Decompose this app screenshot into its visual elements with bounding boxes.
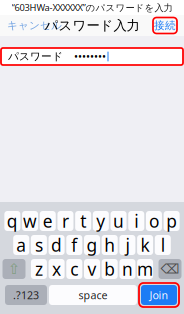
button[interactable]: x: [49, 259, 65, 279]
staticText: o: [149, 209, 159, 232]
staticText: b: [104, 257, 115, 280]
staticText: g: [86, 233, 97, 256]
button[interactable]: パスワード: [1, 48, 183, 65]
staticText: x: [52, 257, 61, 280]
button[interactable]: t: [75, 211, 91, 231]
staticText: ••••••••: [74, 49, 106, 64]
button[interactable]: Join: [139, 283, 179, 307]
staticText: t: [80, 209, 86, 232]
staticText: f: [71, 233, 77, 256]
staticText: k: [141, 233, 150, 256]
staticText: d: [51, 233, 62, 256]
staticText: u: [113, 209, 124, 232]
button[interactable]: c: [66, 259, 82, 279]
staticText: n: [122, 257, 133, 280]
staticText: v: [87, 257, 96, 280]
button[interactable]: i: [128, 211, 144, 231]
staticText: i: [134, 209, 138, 232]
button[interactable]: h: [102, 235, 118, 255]
button[interactable]: Shift: [2, 259, 25, 279]
button[interactable]: l: [155, 235, 171, 255]
staticText: ⌫: [160, 261, 179, 276]
button[interactable]: a: [13, 235, 29, 255]
staticText: p: [166, 209, 177, 232]
button[interactable]: m: [137, 259, 153, 279]
button[interactable]: キャンセル: [0, 15, 66, 35]
button[interactable]: space: [49, 285, 137, 305]
button[interactable]: y: [93, 211, 109, 231]
button[interactable]: n: [119, 259, 135, 279]
staticText: “603HWa-XXXXXX”のパスワードを入力: [11, 1, 172, 14]
staticText: h: [104, 233, 115, 256]
staticText: Join: [149, 288, 168, 302]
button[interactable]: w: [22, 211, 38, 231]
staticText: w: [23, 209, 37, 232]
staticText: l: [161, 233, 165, 256]
staticText: c: [70, 257, 78, 280]
button[interactable]: p: [164, 211, 180, 231]
staticText: q: [7, 209, 18, 232]
staticText: パスワード: [8, 50, 63, 63]
staticText: space: [78, 288, 107, 302]
staticText: パスワード入力: [44, 17, 139, 34]
button[interactable]: Delete: [158, 259, 181, 279]
staticText: キャンセル: [7, 19, 62, 32]
staticText: .?123: [13, 288, 39, 302]
staticText: j: [125, 233, 129, 256]
button[interactable]: e: [40, 211, 56, 231]
staticText: m: [137, 257, 153, 280]
button[interactable]: 接続: [153, 17, 184, 33]
button[interactable]: q: [4, 211, 20, 231]
button[interactable]: g: [84, 235, 100, 255]
button[interactable]: j: [119, 235, 135, 255]
button[interactable]: f: [66, 235, 82, 255]
button[interactable]: u: [110, 211, 126, 231]
button[interactable]: k: [137, 235, 153, 255]
staticText: y: [96, 209, 105, 232]
button[interactable]: b: [102, 259, 118, 279]
staticText: s: [35, 233, 43, 256]
button[interactable]: r: [57, 211, 73, 231]
staticText: 接続: [154, 19, 176, 32]
staticText: r: [62, 209, 69, 232]
staticText: z: [35, 257, 43, 280]
staticText: ⇧: [8, 261, 20, 277]
button[interactable]: z: [31, 259, 47, 279]
staticText: a: [16, 233, 26, 256]
button[interactable]: d: [49, 235, 65, 255]
staticText: e: [43, 209, 53, 232]
button[interactable]: o: [146, 211, 162, 231]
button[interactable]: s: [31, 235, 47, 255]
button[interactable]: v: [84, 259, 100, 279]
button[interactable]: .?123: [5, 285, 47, 305]
